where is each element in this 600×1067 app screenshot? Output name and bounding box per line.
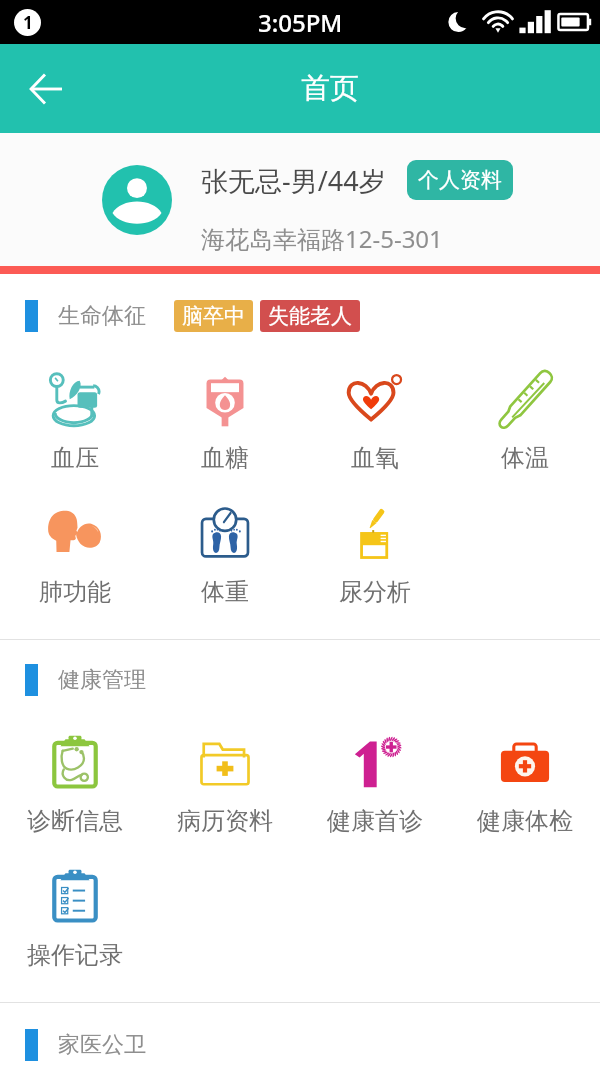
staticText: 脑卒中 — [182, 303, 245, 329]
staticText: 张无忌-男/44岁 — [201, 162, 386, 199]
button[interactable]: 健康首诊 — [300, 721, 450, 855]
button[interactable]: 张无忌-男/44岁 — [0, 133, 600, 266]
button[interactable]: 个人资料 — [407, 160, 513, 200]
staticText: 健康管理 — [58, 666, 146, 694]
staticText: 血糖 — [201, 443, 249, 473]
button[interactable]: 血压 — [0, 358, 150, 492]
button[interactable]: 病历资料 — [150, 721, 300, 855]
staticText: 家医公卫 — [58, 1031, 146, 1059]
staticText: 3:05PM — [258, 6, 343, 39]
button[interactable]: 体温 — [450, 358, 600, 492]
staticText: 诊断信息 — [27, 806, 123, 836]
staticText: 尿分析 — [339, 577, 411, 607]
staticText: 肺功能 — [39, 577, 111, 607]
button[interactable]: 操作记录 — [0, 855, 150, 989]
button[interactable]: 体重 — [150, 492, 300, 626]
button[interactable]: 尿分析 — [300, 492, 450, 626]
button[interactable]: 血糖 — [150, 358, 300, 492]
staticText: 血氧 — [351, 443, 399, 473]
button[interactable]: 血氧 — [300, 358, 450, 492]
button[interactable]: 肺功能 — [0, 492, 150, 626]
staticText: 生命体征 — [58, 302, 146, 330]
staticText: 病历资料 — [177, 806, 273, 836]
staticText: 体重 — [201, 577, 249, 607]
staticText: 操作记录 — [27, 940, 123, 970]
staticText: 健康体检 — [477, 806, 573, 836]
button[interactable]: Back — [18, 61, 74, 117]
staticText: 血压 — [51, 443, 99, 473]
button[interactable]: 诊断信息 — [0, 721, 150, 855]
staticText: 健康首诊 — [327, 806, 423, 836]
button[interactable]: 健康体检 — [450, 721, 600, 855]
staticText: 失能老人 — [268, 303, 352, 329]
staticText: 体温 — [501, 443, 549, 473]
staticText: 个人资料 — [418, 167, 502, 193]
staticText: 海花岛幸福路12-5-301 — [201, 222, 443, 255]
staticText: 1 — [23, 11, 33, 34]
staticText: 首页 — [301, 70, 359, 107]
